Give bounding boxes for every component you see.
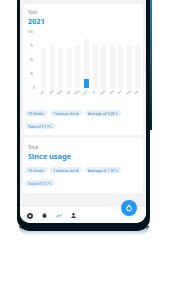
- staticText: Jan: [39, 89, 46, 95]
- button[interactable]: Average of 1,97 L: [85, 167, 121, 173]
- button[interactable]: Profile: [68, 210, 79, 221]
- staticText: 100: [28, 30, 33, 34]
- button[interactable]: Drinks: [39, 210, 50, 221]
- staticText: Total of 17,7 L: [28, 181, 52, 186]
- staticText: Total of 17,7 L: [28, 124, 52, 129]
- staticText: May: [73, 88, 81, 96]
- staticText: Oct: [116, 89, 123, 95]
- button[interactable]: Settings: [24, 210, 35, 221]
- staticText: Apr: [65, 89, 72, 95]
- staticText: Average of 0,05 L: [88, 111, 118, 116]
- button[interactable]: Add drink: [121, 200, 137, 216]
- staticText: Jun: [82, 89, 89, 95]
- staticText: Feb: [48, 89, 55, 95]
- staticText: Aug: [99, 88, 107, 96]
- staticText: Year: [28, 9, 38, 15]
- button[interactable]: 1 various drink: [50, 167, 82, 173]
- staticText: Jul: [91, 89, 97, 95]
- button[interactable]: Total of 17,7 L: [25, 123, 55, 129]
- staticText: 1 various drink: [53, 111, 79, 116]
- button[interactable]: Total of 17,7 L: [25, 180, 55, 186]
- button[interactable]: 73 drinks: [25, 110, 47, 116]
- staticText: 2021: [28, 16, 45, 26]
- staticText: Sep: [108, 89, 115, 95]
- staticText: Nov: [125, 88, 133, 96]
- button[interactable]: Average of 0,05 L: [85, 110, 121, 116]
- staticText: Since usage: [28, 151, 72, 161]
- button[interactable]: Statistics: [53, 210, 64, 221]
- staticText: Dec: [133, 89, 140, 95]
- staticText: Total: [28, 144, 39, 150]
- button[interactable]: 1 various drink: [50, 110, 82, 116]
- staticText: 73 drinks: [28, 168, 44, 173]
- staticText: 75: [30, 44, 34, 48]
- staticText: Average of 1,97 L: [88, 168, 118, 173]
- staticText: 0: [33, 86, 35, 90]
- staticText: 73 drinks: [28, 111, 44, 116]
- staticText: Mar: [56, 88, 64, 96]
- button[interactable]: 73 drinks: [25, 167, 47, 173]
- staticText: 1 various drink: [53, 168, 79, 173]
- staticText: 25: [30, 72, 34, 76]
- staticText: 50: [30, 58, 34, 62]
